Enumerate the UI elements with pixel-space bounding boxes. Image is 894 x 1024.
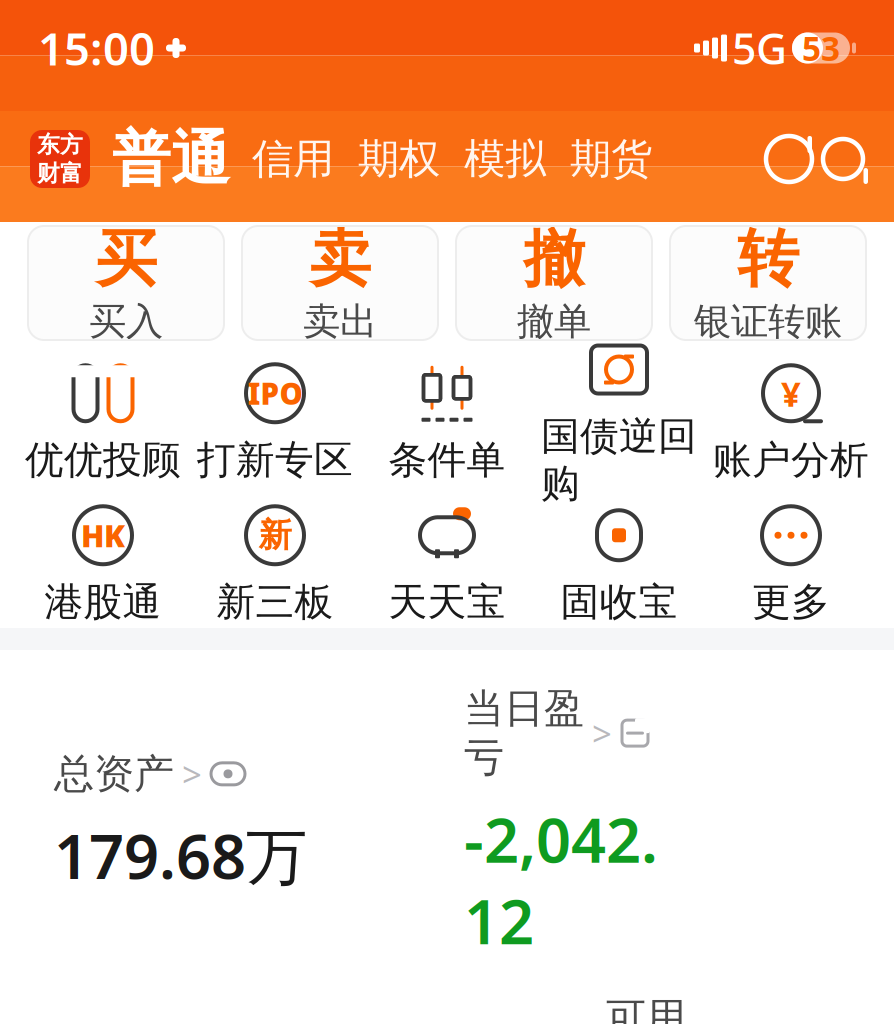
button[interactable]: IPO [189, 362, 361, 486]
button[interactable]: HK [17, 504, 189, 628]
button[interactable]: 卖 [242, 226, 438, 340]
button[interactable]: 更多 [705, 504, 877, 628]
staticText: 卖出 [303, 299, 377, 345]
staticText: 买入 [89, 299, 163, 345]
staticText: 新 [258, 515, 291, 556]
button[interactable]: 期货 [558, 134, 664, 184]
staticText: 转 [737, 221, 798, 297]
staticText: 撤 [523, 221, 584, 297]
button[interactable]: 刷新 [762, 132, 816, 186]
button[interactable]: 总资产 [54, 749, 464, 896]
staticText: 港股通 [44, 578, 161, 626]
staticText: 账户分析 [713, 436, 869, 484]
staticText: IPO [247, 374, 302, 413]
staticText: 固收宝 [560, 578, 677, 626]
staticText: > [592, 710, 612, 756]
staticText: 普通 [112, 123, 230, 195]
staticText: 优优投顾 [25, 436, 181, 484]
staticText: 新三板 [216, 578, 333, 626]
button[interactable]: 模拟 [452, 134, 558, 184]
staticText: 条件单 [388, 436, 505, 484]
button[interactable]: 条件单 [361, 362, 533, 486]
staticText: HK [81, 515, 125, 556]
button[interactable]: 信用 [240, 134, 346, 184]
staticText: -2,042.12 [464, 798, 658, 961]
staticText: 179.68万 [54, 814, 307, 896]
button[interactable]: 转 [670, 226, 866, 340]
staticText: 财富 [37, 159, 83, 187]
staticText: 银证转账 [694, 299, 842, 345]
staticText: 15:00 [38, 18, 155, 78]
staticText: 国债逆回购 [541, 412, 697, 507]
button[interactable]: 新 [189, 504, 361, 628]
button[interactable]: 搜索 [816, 132, 870, 186]
button[interactable]: 固收宝 [533, 504, 705, 628]
button[interactable]: 优优投顾 [17, 362, 189, 486]
staticText: 53 [802, 26, 840, 70]
staticText: 可用 [606, 993, 686, 1024]
button[interactable]: 东方财富 [30, 130, 90, 188]
button[interactable]: ¥ [705, 362, 877, 486]
staticText: 买 [95, 221, 156, 297]
staticText: 总资产 [54, 749, 174, 798]
button[interactable]: 天天宝 [361, 504, 533, 628]
button[interactable]: 可用 [606, 993, 750, 1024]
button[interactable]: 撤 [456, 226, 652, 340]
staticText: > [182, 751, 202, 797]
staticText: 信用 [252, 134, 334, 184]
staticText: 期权 [358, 134, 440, 184]
staticText: 期货 [570, 134, 652, 184]
button[interactable]: 当日盈亏 [464, 684, 679, 961]
staticText: 卖 [309, 221, 370, 297]
button[interactable]: 普通 [90, 123, 240, 195]
staticText: 当日盈亏 [464, 684, 584, 782]
button[interactable]: 国债逆回购 [533, 362, 705, 486]
staticText: 5G [732, 20, 787, 76]
staticText: 模拟 [464, 134, 546, 184]
staticText: 打新专区 [197, 436, 353, 484]
staticText: ¥ [781, 370, 801, 416]
staticText: 更多 [752, 578, 830, 626]
button[interactable]: 买 [28, 226, 224, 340]
staticText: 天天宝 [388, 578, 505, 626]
button[interactable]: 期权 [346, 134, 452, 184]
staticText: 东方 [37, 131, 83, 158]
staticText: 撤单 [517, 299, 591, 345]
